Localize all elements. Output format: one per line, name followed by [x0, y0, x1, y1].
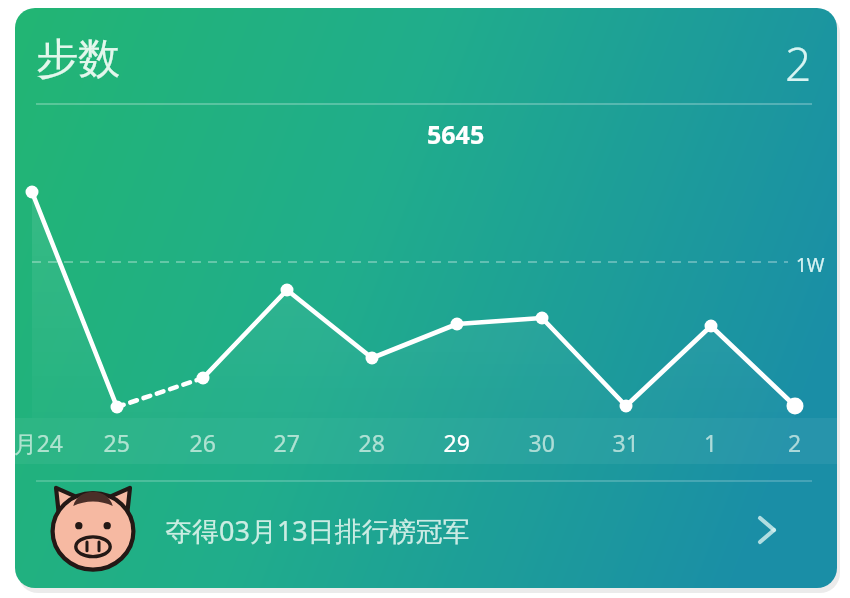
button[interactable]: 步数 card: [0, 0, 850, 598]
